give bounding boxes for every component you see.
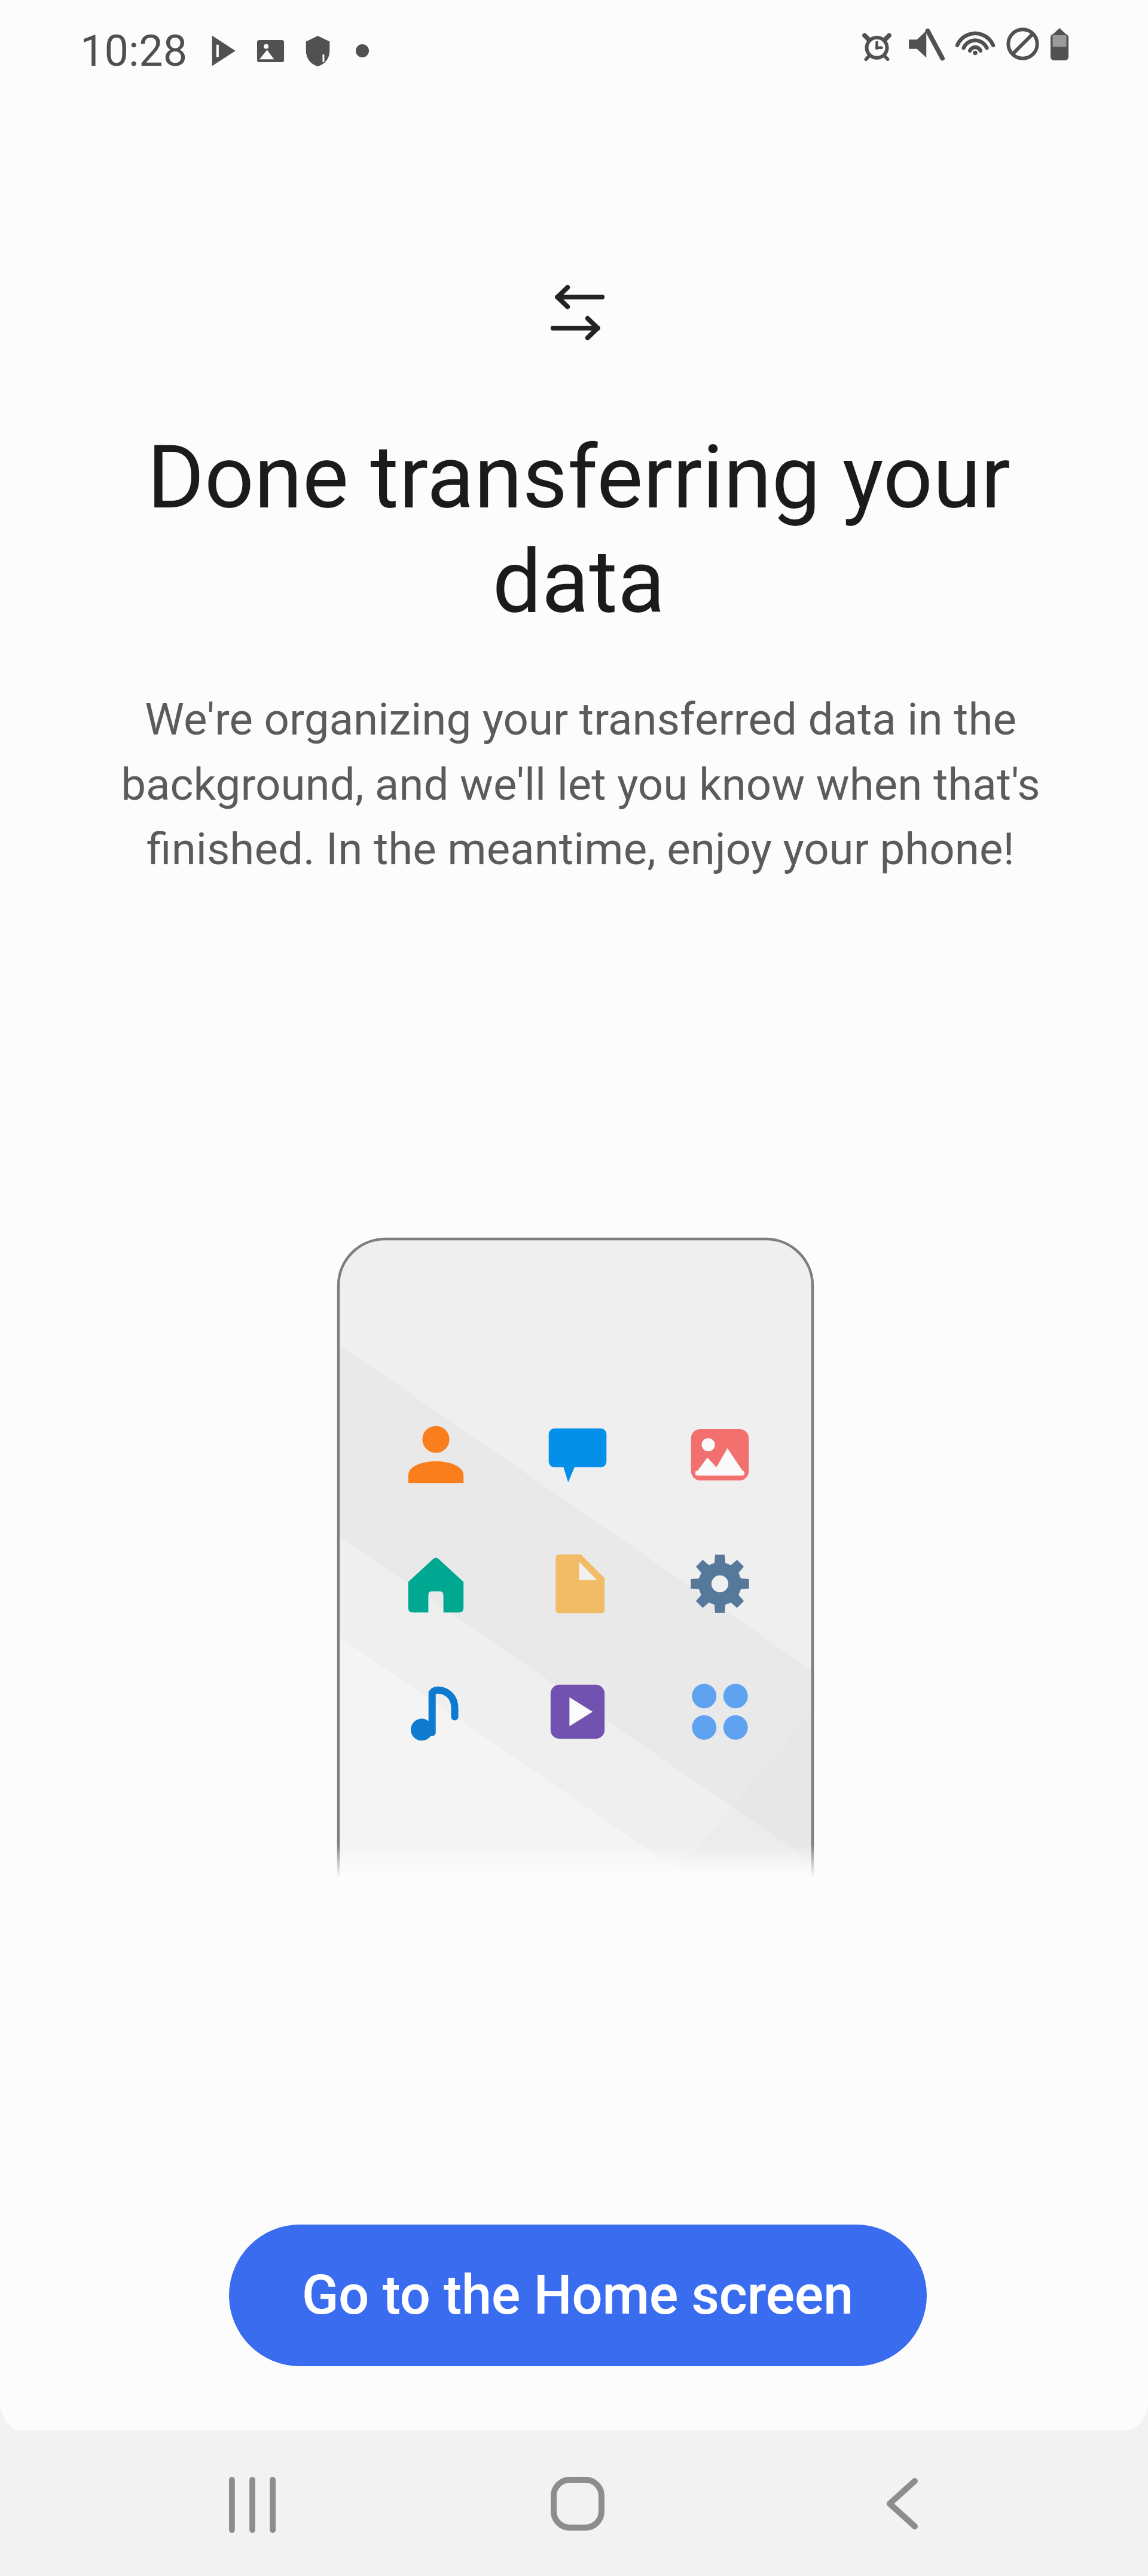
button[interactable]: Back [831,2432,974,2575]
staticText: Done transferring your data [124,427,1033,633]
button[interactable]: Recent apps [181,2433,324,2576]
button[interactable]: Home [506,2432,649,2575]
staticText: Go to the Home screen [302,2264,854,2327]
button[interactable]: Go to the Home screen [229,2225,927,2366]
staticText: We're organizing your transferred data i… [84,693,1077,875]
staticText: 10:28 [80,26,188,76]
